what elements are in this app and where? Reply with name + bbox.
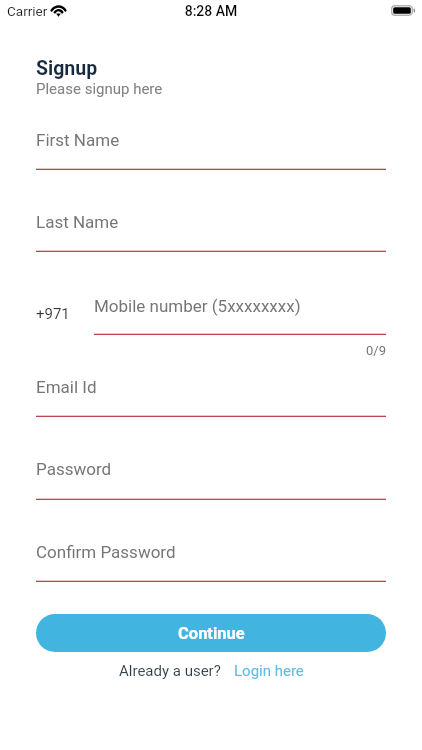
other: Battery full xyxy=(391,5,416,16)
staticText: Carrier xyxy=(7,3,48,19)
button[interactable]: First Name xyxy=(36,120,386,169)
staticText: Last Name xyxy=(36,212,119,232)
button[interactable]: Last Name xyxy=(36,202,386,251)
staticText: Already a user? xyxy=(119,662,221,680)
staticText: Password xyxy=(36,459,112,479)
staticText: Signup xyxy=(36,57,98,80)
button[interactable]: Login here xyxy=(234,662,304,680)
staticText: First Name xyxy=(36,130,120,150)
staticText: Mobile number (5xxxxxxxx) xyxy=(94,296,301,316)
button[interactable]: Mobile number (5xxxxxxxx) xyxy=(94,286,386,335)
staticText: 8:28 AM xyxy=(0,3,422,19)
staticText: +971 xyxy=(36,305,70,323)
other: Wi-Fi signal xyxy=(51,1,66,14)
staticText: Please signup here xyxy=(36,80,163,98)
staticText: Email Id xyxy=(36,377,97,397)
staticText: 0/9 xyxy=(0,343,386,358)
button[interactable]: Continue xyxy=(36,614,386,652)
button[interactable]: Confirm Password xyxy=(36,532,386,581)
button[interactable]: Password xyxy=(36,449,386,498)
staticText: Continue xyxy=(178,624,245,643)
button[interactable]: Email Id xyxy=(36,367,386,416)
staticText: Login here xyxy=(234,662,304,680)
staticText: Confirm Password xyxy=(36,542,176,562)
